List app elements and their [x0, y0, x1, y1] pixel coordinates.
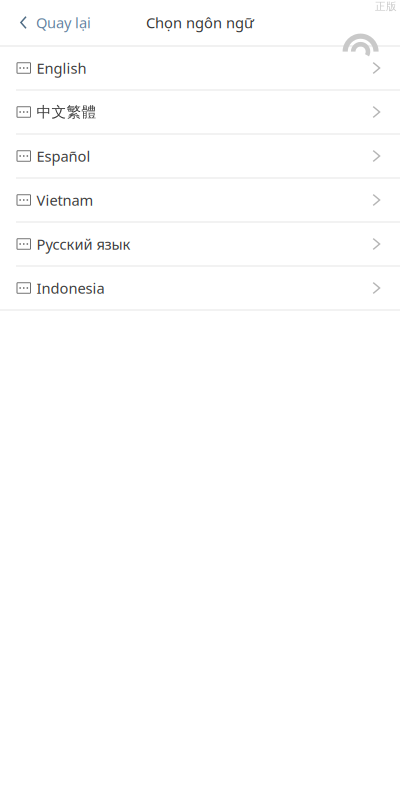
- staticText: 正版: [375, 0, 397, 13]
- staticText: Indonesia: [36, 278, 104, 298]
- staticText: Vietnam: [36, 190, 93, 210]
- button[interactable]: Español: [0, 135, 400, 179]
- staticText: Русский язык: [36, 234, 130, 254]
- button[interactable]: Русский язык: [0, 223, 400, 267]
- button[interactable]: Quay lại: [0, 0, 105, 45]
- staticText: Quay lại: [36, 13, 91, 32]
- button[interactable]: Vietnam: [0, 179, 400, 223]
- staticText: English: [36, 58, 86, 78]
- staticText: Español: [36, 146, 90, 166]
- staticText: Chọn ngôn ngữ: [146, 13, 254, 32]
- button[interactable]: Indonesia: [0, 267, 400, 311]
- staticText: 中文繁體: [36, 103, 96, 121]
- button[interactable]: English: [0, 47, 400, 91]
- button[interactable]: 中文繁體: [0, 91, 400, 135]
